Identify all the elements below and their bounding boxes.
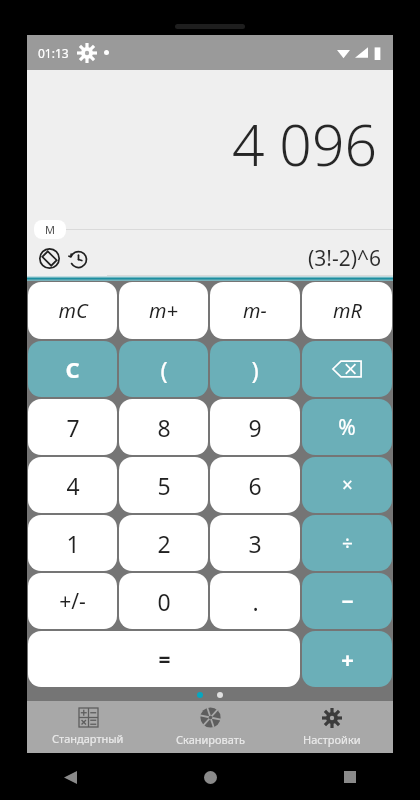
button[interactable]: Стандартный — [27, 701, 149, 753]
button[interactable]: mC — [28, 282, 117, 339]
button[interactable]: C — [28, 341, 117, 397]
button[interactable]: Сканировать — [149, 701, 271, 753]
button[interactable]: ( — [119, 341, 208, 397]
button[interactable]: History — [65, 245, 91, 271]
button[interactable]: m- — [210, 282, 300, 339]
button[interactable]: 3 — [210, 515, 300, 571]
staticText: Стандартный — [52, 731, 124, 746]
button[interactable]: ÷ — [302, 515, 392, 571]
staticText: C — [65, 354, 80, 384]
staticText: ) — [251, 353, 259, 386]
staticText: % — [338, 413, 356, 442]
staticText: 8 — [157, 412, 171, 443]
button[interactable]: 8 — [119, 399, 208, 455]
button[interactable]: m+ — [119, 282, 208, 339]
button[interactable]: 1 — [28, 515, 117, 571]
staticText: (3!-2)^6 — [308, 244, 382, 273]
button[interactable]: 7 — [28, 399, 117, 455]
staticText: Сканировать — [176, 732, 245, 747]
staticText: 4 — [66, 470, 80, 501]
staticText: ( — [160, 353, 168, 386]
staticText: 01:13 — [38, 45, 69, 61]
button[interactable]: 4 — [28, 457, 117, 513]
button[interactable]: × — [302, 457, 392, 513]
button[interactable]: 0 — [119, 573, 208, 629]
staticText: − — [341, 587, 354, 616]
staticText: 9 — [248, 412, 262, 443]
staticText: + — [341, 644, 354, 674]
button[interactable]: Home — [197, 764, 223, 790]
button[interactable]: Back — [57, 764, 83, 790]
button[interactable]: Настройки — [271, 701, 393, 753]
staticText: mC — [58, 297, 88, 324]
staticText: m- — [243, 297, 267, 324]
staticText: M — [45, 222, 55, 237]
staticText: +/- — [59, 587, 86, 616]
button[interactable]: − — [302, 573, 392, 629]
button[interactable]: Backspace — [302, 341, 392, 397]
staticText: 6 — [248, 470, 262, 501]
staticText: . — [252, 586, 259, 617]
staticText: m+ — [149, 297, 178, 324]
staticText: 2 — [157, 528, 171, 559]
staticText: 1 — [66, 528, 80, 559]
staticText: × — [342, 472, 353, 498]
button[interactable]: % — [302, 399, 392, 455]
button[interactable]: . — [210, 573, 300, 629]
button[interactable]: 2 — [119, 515, 208, 571]
staticText: 4 096 — [232, 105, 378, 183]
button[interactable]: mR — [302, 282, 392, 339]
staticText: ÷ — [342, 530, 353, 556]
button[interactable]: 6 — [210, 457, 300, 513]
button[interactable]: Rotate — [36, 245, 62, 271]
staticText: 7 — [66, 412, 80, 443]
staticText: mR — [333, 297, 362, 324]
staticText: 3 — [248, 528, 262, 559]
button[interactable]: + — [302, 631, 392, 687]
button[interactable]: ) — [210, 341, 300, 397]
button[interactable]: = — [28, 631, 300, 687]
button[interactable]: 5 — [119, 457, 208, 513]
staticText: 0 — [157, 586, 171, 617]
staticText: Настройки — [303, 732, 361, 747]
staticText: 5 — [157, 470, 171, 501]
button[interactable]: Recents — [337, 764, 363, 790]
button[interactable]: 9 — [210, 399, 300, 455]
staticText: = — [158, 645, 171, 674]
button[interactable]: +/- — [28, 573, 117, 629]
